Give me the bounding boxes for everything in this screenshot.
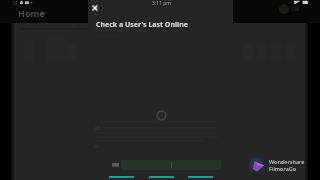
staticText: Wondershare: [269, 158, 305, 165]
button[interactable]: Home: [18, 7, 45, 19]
staticText: 3:11 pm: [152, 0, 171, 7]
staticText: FilmoraGo: [269, 165, 297, 172]
button[interactable]: Close: [89, 2, 101, 14]
button[interactable]: Check a User's Last Online: [96, 20, 188, 30]
